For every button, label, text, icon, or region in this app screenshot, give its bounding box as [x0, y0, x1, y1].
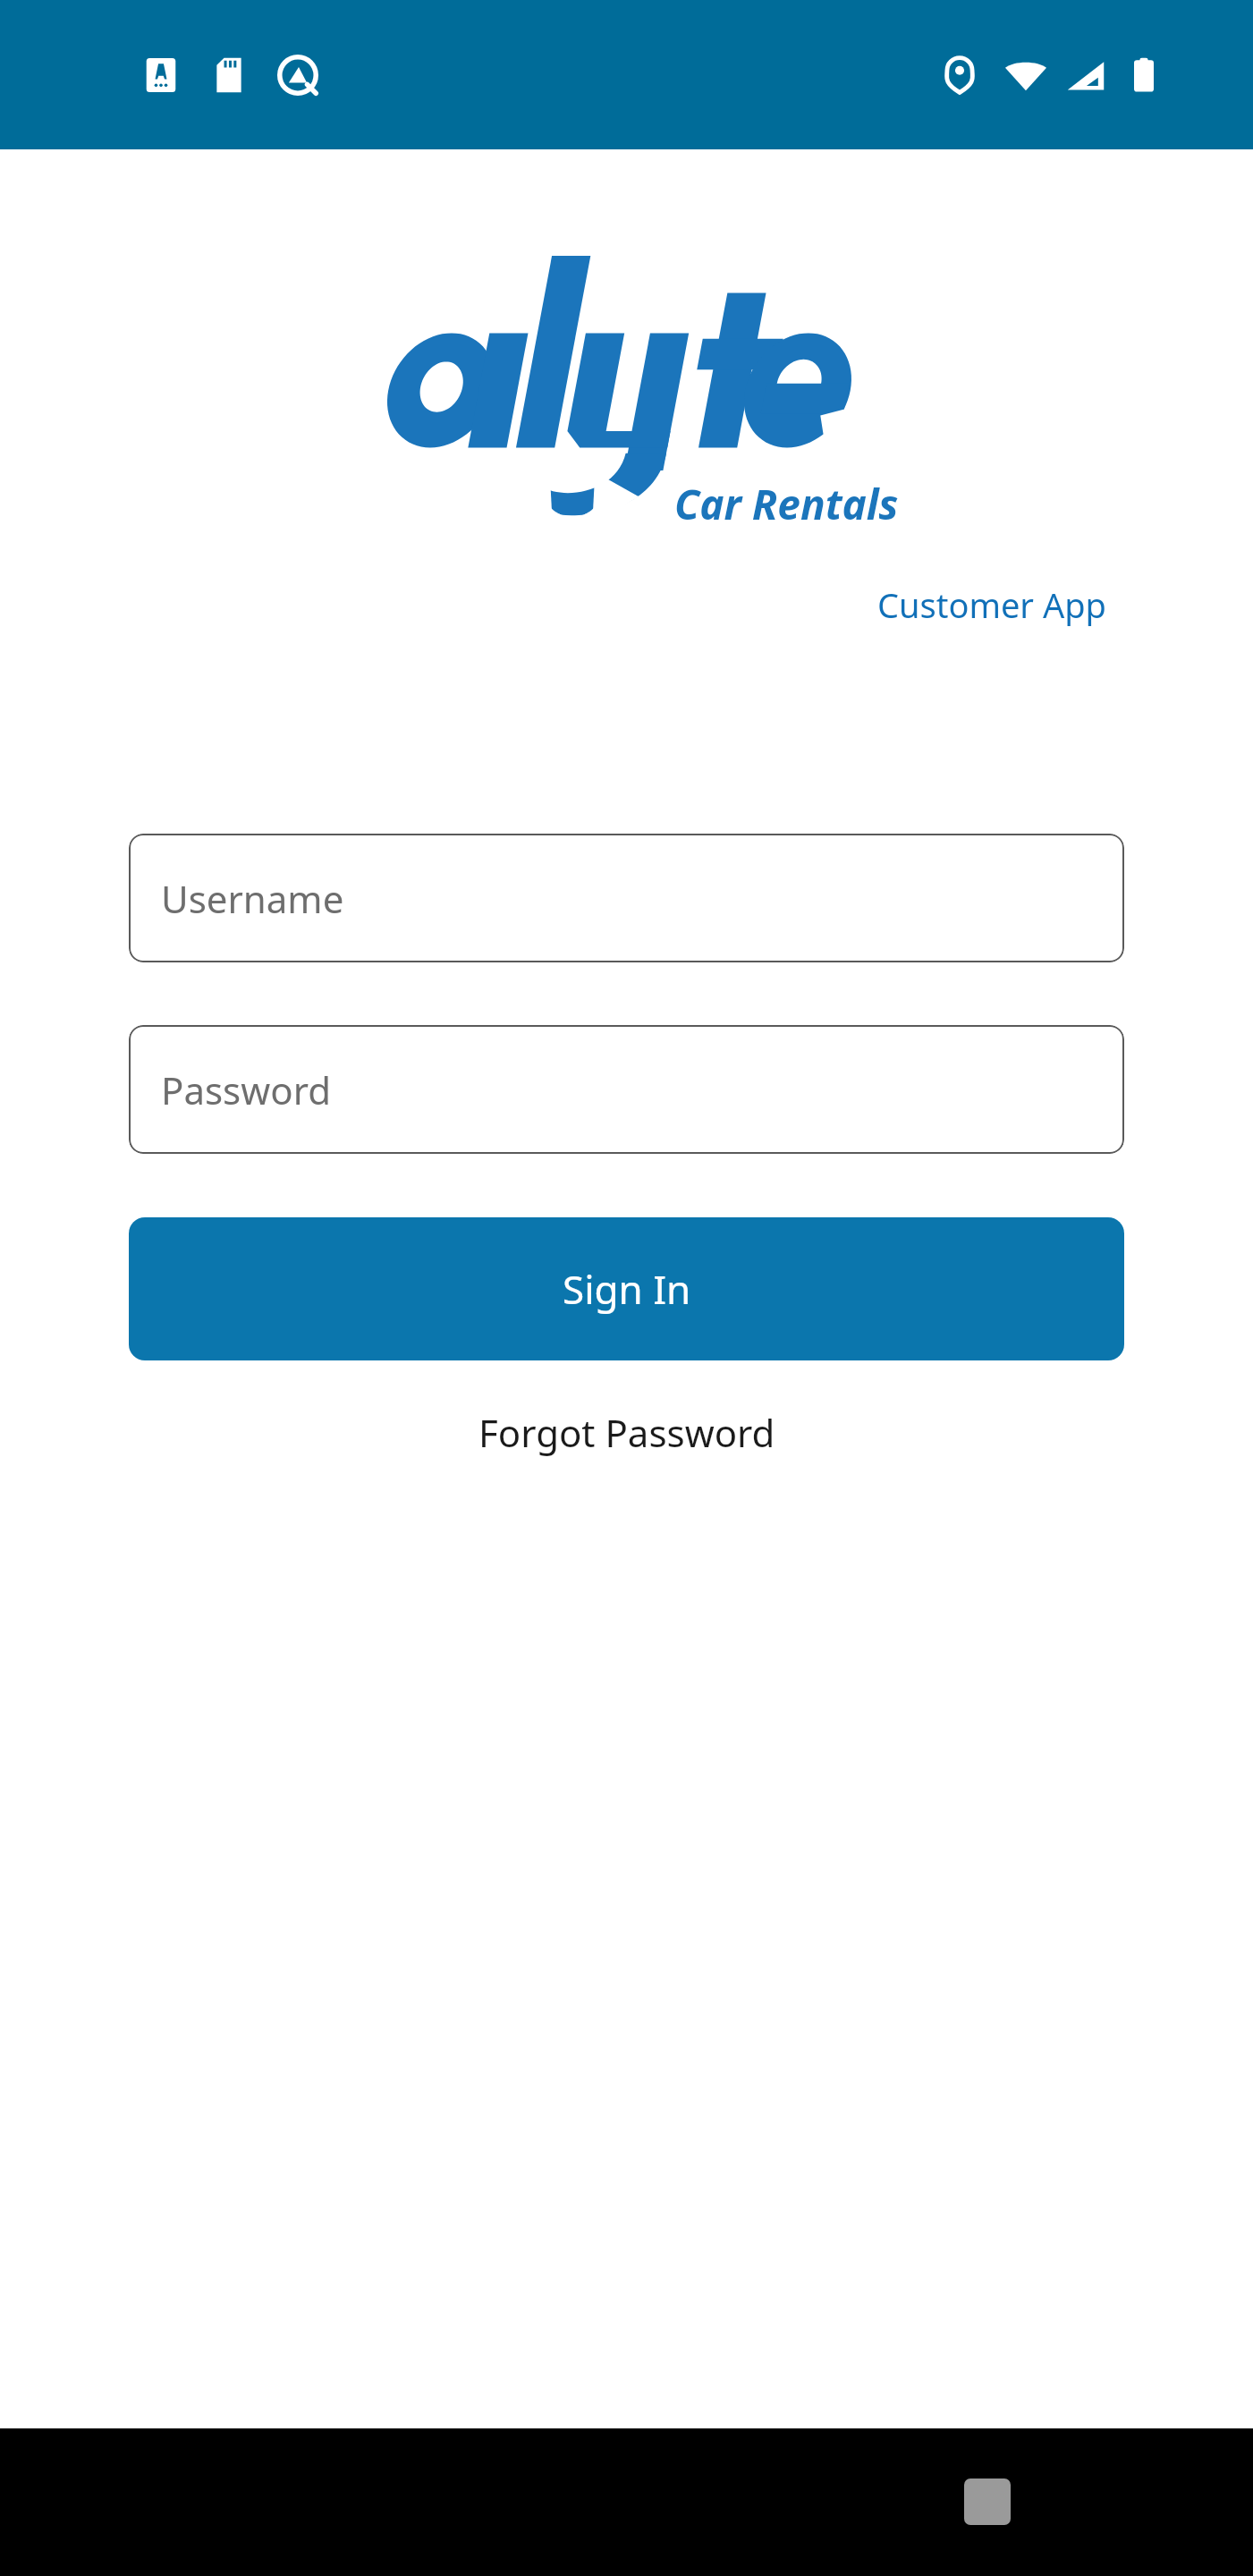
staticText: Username — [161, 873, 344, 924]
staticText: Sign In — [563, 1262, 691, 1316]
button[interactable]: Forgot Password — [457, 1398, 797, 1467]
staticText: Password — [161, 1064, 331, 1115]
button[interactable]: Recent apps — [964, 2479, 1011, 2525]
staticText: Customer App — [877, 581, 1106, 628]
button[interactable]: Username — [129, 834, 1124, 962]
button[interactable]: Password — [129, 1025, 1124, 1154]
button[interactable]: Customer App — [877, 581, 1106, 628]
staticText: Car Rentals — [674, 476, 899, 532]
staticText: Forgot Password — [478, 1407, 775, 1458]
button[interactable]: Sign In — [129, 1217, 1124, 1360]
